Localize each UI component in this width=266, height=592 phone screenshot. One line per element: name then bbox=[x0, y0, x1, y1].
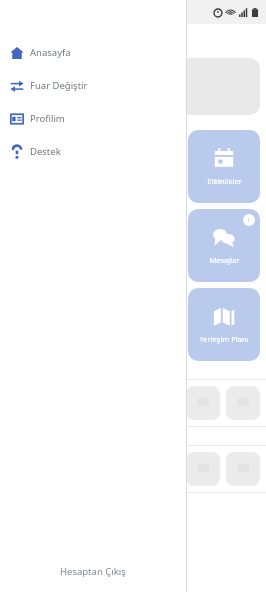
button[interactable]: Etkinlikler bbox=[188, 130, 260, 203]
button[interactable]: Mesajlar bbox=[188, 209, 260, 282]
button[interactable]: Destek bbox=[0, 135, 186, 168]
staticText: Mesajlar bbox=[209, 255, 240, 265]
button[interactable]: Placeholder bbox=[226, 452, 260, 486]
button[interactable]: Hesaptan Çıkış bbox=[0, 550, 186, 592]
button[interactable]: Fuar Değiştir bbox=[0, 69, 186, 102]
staticText: Hesaptan Çıkış bbox=[60, 565, 126, 578]
staticText: 1 bbox=[247, 216, 251, 224]
staticText: Etkinlikler bbox=[207, 176, 242, 186]
staticText: Destek bbox=[30, 145, 61, 158]
button[interactable]: Placeholder bbox=[226, 386, 260, 420]
button[interactable] bbox=[180, 58, 260, 115]
staticText: Profilim bbox=[30, 112, 65, 125]
button[interactable]: Profilim bbox=[0, 102, 186, 135]
button[interactable]: Anasayfa bbox=[0, 36, 186, 69]
button[interactable]: Yerlesim Plani bbox=[188, 288, 260, 361]
button[interactable]: Placeholder bbox=[186, 452, 220, 486]
button[interactable]: Placeholder bbox=[186, 386, 220, 420]
staticText: Yerleşim Planı bbox=[199, 334, 249, 344]
staticText: Fuar Değiştir bbox=[30, 79, 88, 92]
staticText: Anasayfa bbox=[30, 46, 71, 59]
